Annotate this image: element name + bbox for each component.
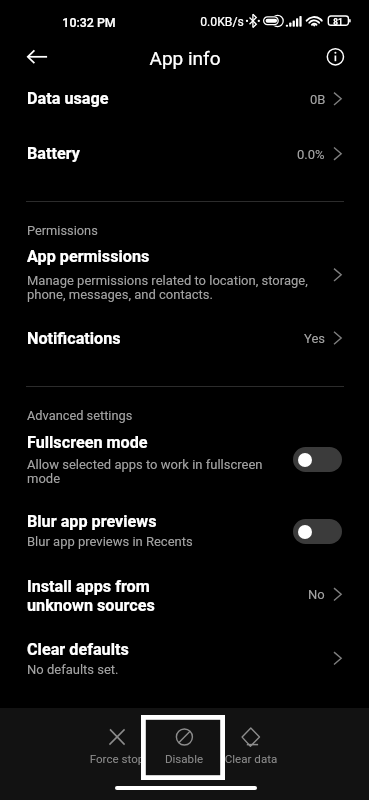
staticText: Blur app previews in Recents xyxy=(27,534,193,549)
staticText: Manage permissions related to location, … xyxy=(27,273,308,302)
button[interactable]: Toggle off xyxy=(293,519,342,544)
staticText: 0.0% xyxy=(297,147,325,162)
staticText: Data usage xyxy=(27,89,109,108)
button[interactable] xyxy=(0,80,369,134)
staticText: Battery xyxy=(27,144,80,163)
button[interactable]: Toggle off xyxy=(293,447,342,472)
staticText: No defaults set. xyxy=(27,662,119,677)
button[interactable] xyxy=(0,634,369,684)
staticText: Advanced settings xyxy=(27,408,133,423)
staticText: 0.0KB/s xyxy=(192,15,252,29)
button[interactable] xyxy=(75,713,159,779)
staticText: Clear defaults xyxy=(27,640,129,659)
staticText: Blur app previews xyxy=(27,512,157,531)
button[interactable] xyxy=(0,244,369,306)
button[interactable] xyxy=(0,506,369,556)
button[interactable]: Back xyxy=(15,35,59,79)
button[interactable] xyxy=(209,713,293,779)
staticText: 81 xyxy=(328,17,348,27)
staticText: Clear data xyxy=(209,752,293,766)
button[interactable] xyxy=(0,430,369,488)
staticText: Yes xyxy=(304,331,325,346)
staticText: Install apps from unknown sources xyxy=(27,577,155,615)
button[interactable] xyxy=(0,134,369,188)
button[interactable] xyxy=(0,318,369,366)
staticText: No xyxy=(308,587,325,602)
button[interactable]: App details xyxy=(313,35,357,79)
staticText: Notifications xyxy=(27,329,121,348)
staticText: 10:32 PM xyxy=(49,15,129,30)
staticText: Fullscreen mode xyxy=(27,433,148,452)
staticText: Disable xyxy=(142,752,226,766)
staticText: 0B xyxy=(310,92,326,107)
staticText: Allow selected apps to work in fullscree… xyxy=(27,457,263,486)
staticText: Force stop xyxy=(75,752,159,766)
button[interactable] xyxy=(142,713,226,779)
button[interactable] xyxy=(0,570,369,622)
staticText: App info xyxy=(95,47,275,69)
staticText: Permissions xyxy=(27,223,98,238)
staticText: App permissions xyxy=(27,247,150,266)
